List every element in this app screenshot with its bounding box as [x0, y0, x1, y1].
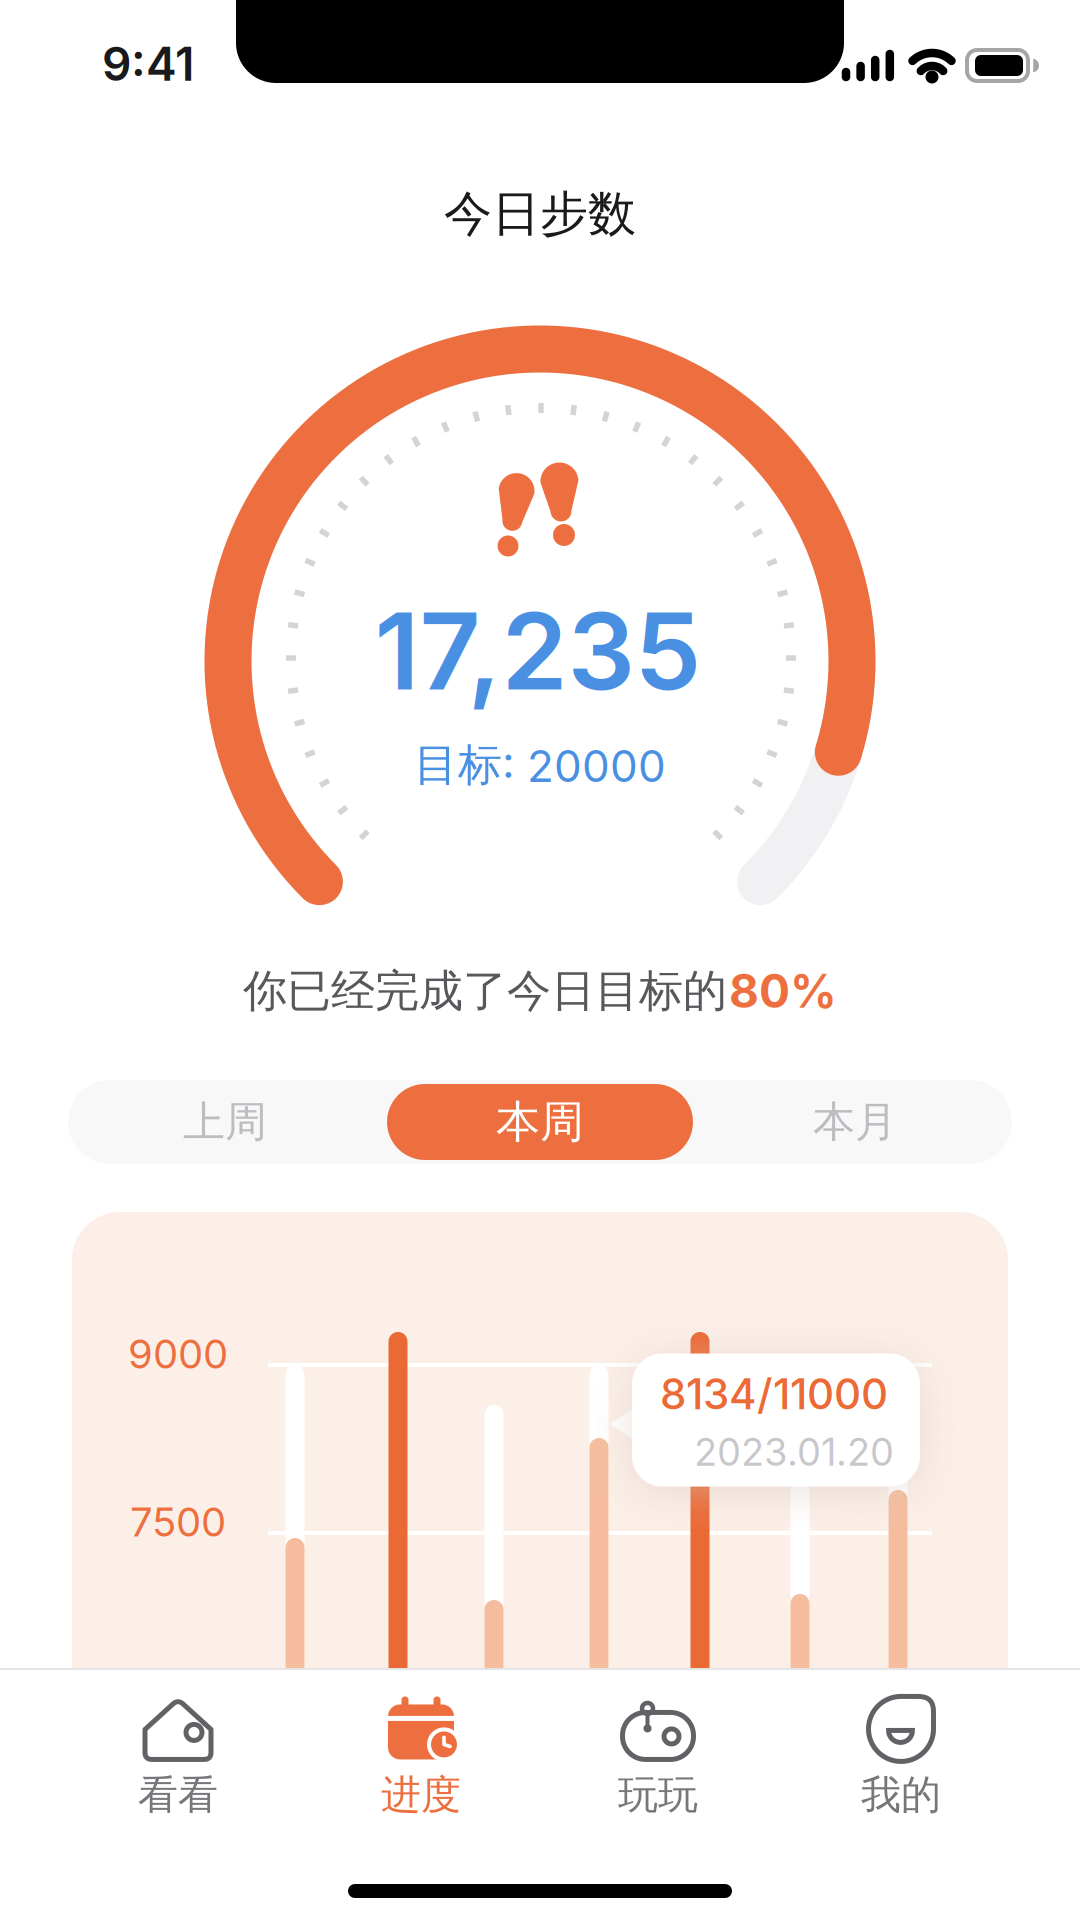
button[interactable]: 玩玩 [568, 1690, 748, 1826]
staticText: 本月 [813, 1096, 897, 1148]
staticText: 17,235 [374, 588, 701, 713]
button[interactable]: 上周 [68, 1080, 382, 1164]
staticText: 7500 [130, 1498, 226, 1546]
button[interactable]: 进度 [331, 1690, 511, 1826]
staticText: 本周 [496, 1095, 584, 1149]
staticText: 9000 [128, 1330, 228, 1378]
staticText: 9:41 [102, 37, 194, 91]
staticText: 80% [729, 964, 837, 1018]
staticText: 今日步数 [444, 184, 636, 243]
button[interactable]: 本月 [698, 1080, 1012, 1164]
staticText: 目标: 20000 [414, 738, 666, 792]
button[interactable]: 本周 [382, 1080, 698, 1164]
staticText: 玩玩 [618, 1770, 698, 1819]
staticText: 进度 [381, 1770, 461, 1819]
staticText: 2023.01.20 [694, 1430, 894, 1474]
staticText: 看看 [138, 1770, 218, 1819]
button[interactable]: 我的 [811, 1690, 991, 1826]
staticText: 你已经完成了今日目标的 [243, 964, 727, 1018]
button[interactable]: 看看 [88, 1690, 268, 1826]
staticText: 我的 [861, 1770, 941, 1819]
staticText: 8134/11000 [660, 1369, 888, 1419]
staticText: 上周 [183, 1096, 267, 1148]
